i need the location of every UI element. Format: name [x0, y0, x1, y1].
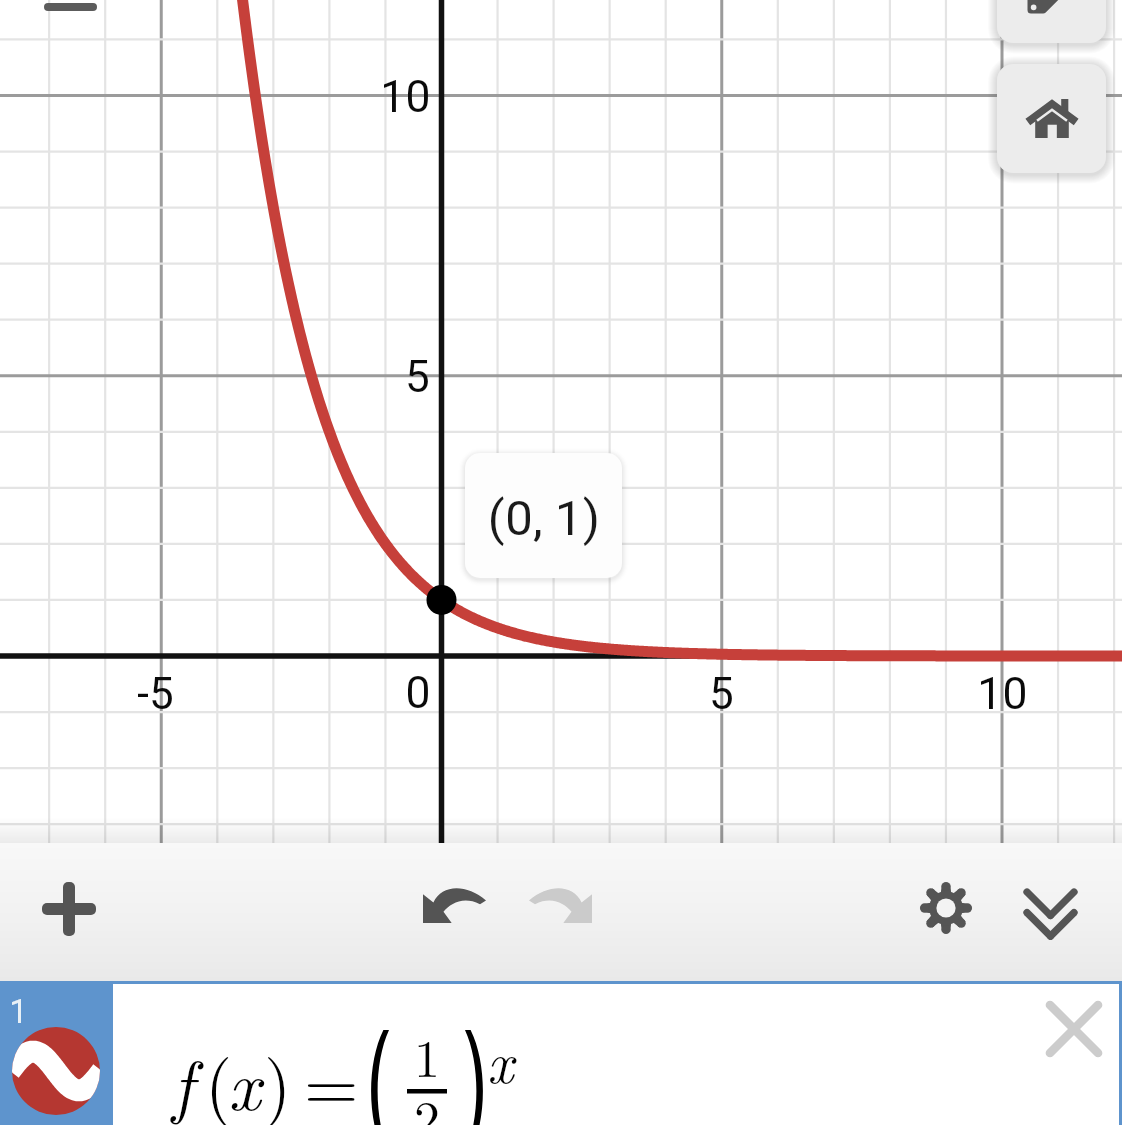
button[interactable]: Label: [997, 0, 1106, 43]
button[interactable]: Close: [1044, 999, 1104, 1059]
button[interactable]: Zoom out: [44, 3, 97, 11]
button[interactable]: Add: [42, 882, 96, 936]
button[interactable]: Row 1: [0, 984, 113, 1125]
button[interactable]: Settings: [920, 882, 972, 934]
button[interactable]: Redo: [529, 888, 592, 923]
button[interactable]: Undo: [423, 888, 486, 923]
button[interactable]: Collapse: [1027, 892, 1074, 936]
button[interactable]: Home: [997, 64, 1106, 173]
